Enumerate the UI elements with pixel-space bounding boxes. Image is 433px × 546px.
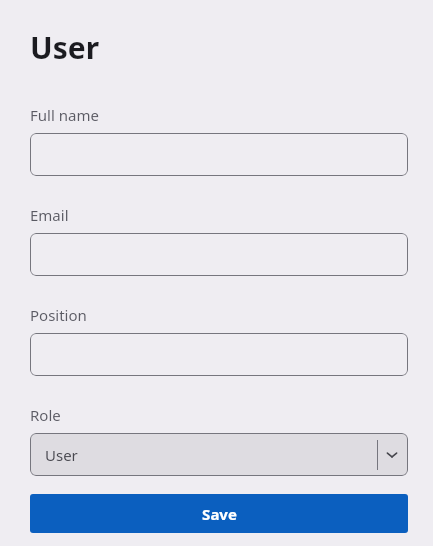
- staticText: Full name: [30, 105, 99, 125]
- staticText: Save: [202, 504, 237, 524]
- button[interactable]: Save: [30, 494, 408, 533]
- button[interactable]: [30, 133, 408, 176]
- button[interactable]: [30, 333, 408, 376]
- button[interactable]: [30, 233, 408, 276]
- staticText: Email: [30, 205, 69, 225]
- staticText: Position: [30, 305, 87, 325]
- staticText: User: [45, 445, 78, 465]
- staticText: User: [30, 27, 100, 68]
- staticText: Role: [30, 405, 61, 425]
- button[interactable]: User: [30, 433, 408, 476]
